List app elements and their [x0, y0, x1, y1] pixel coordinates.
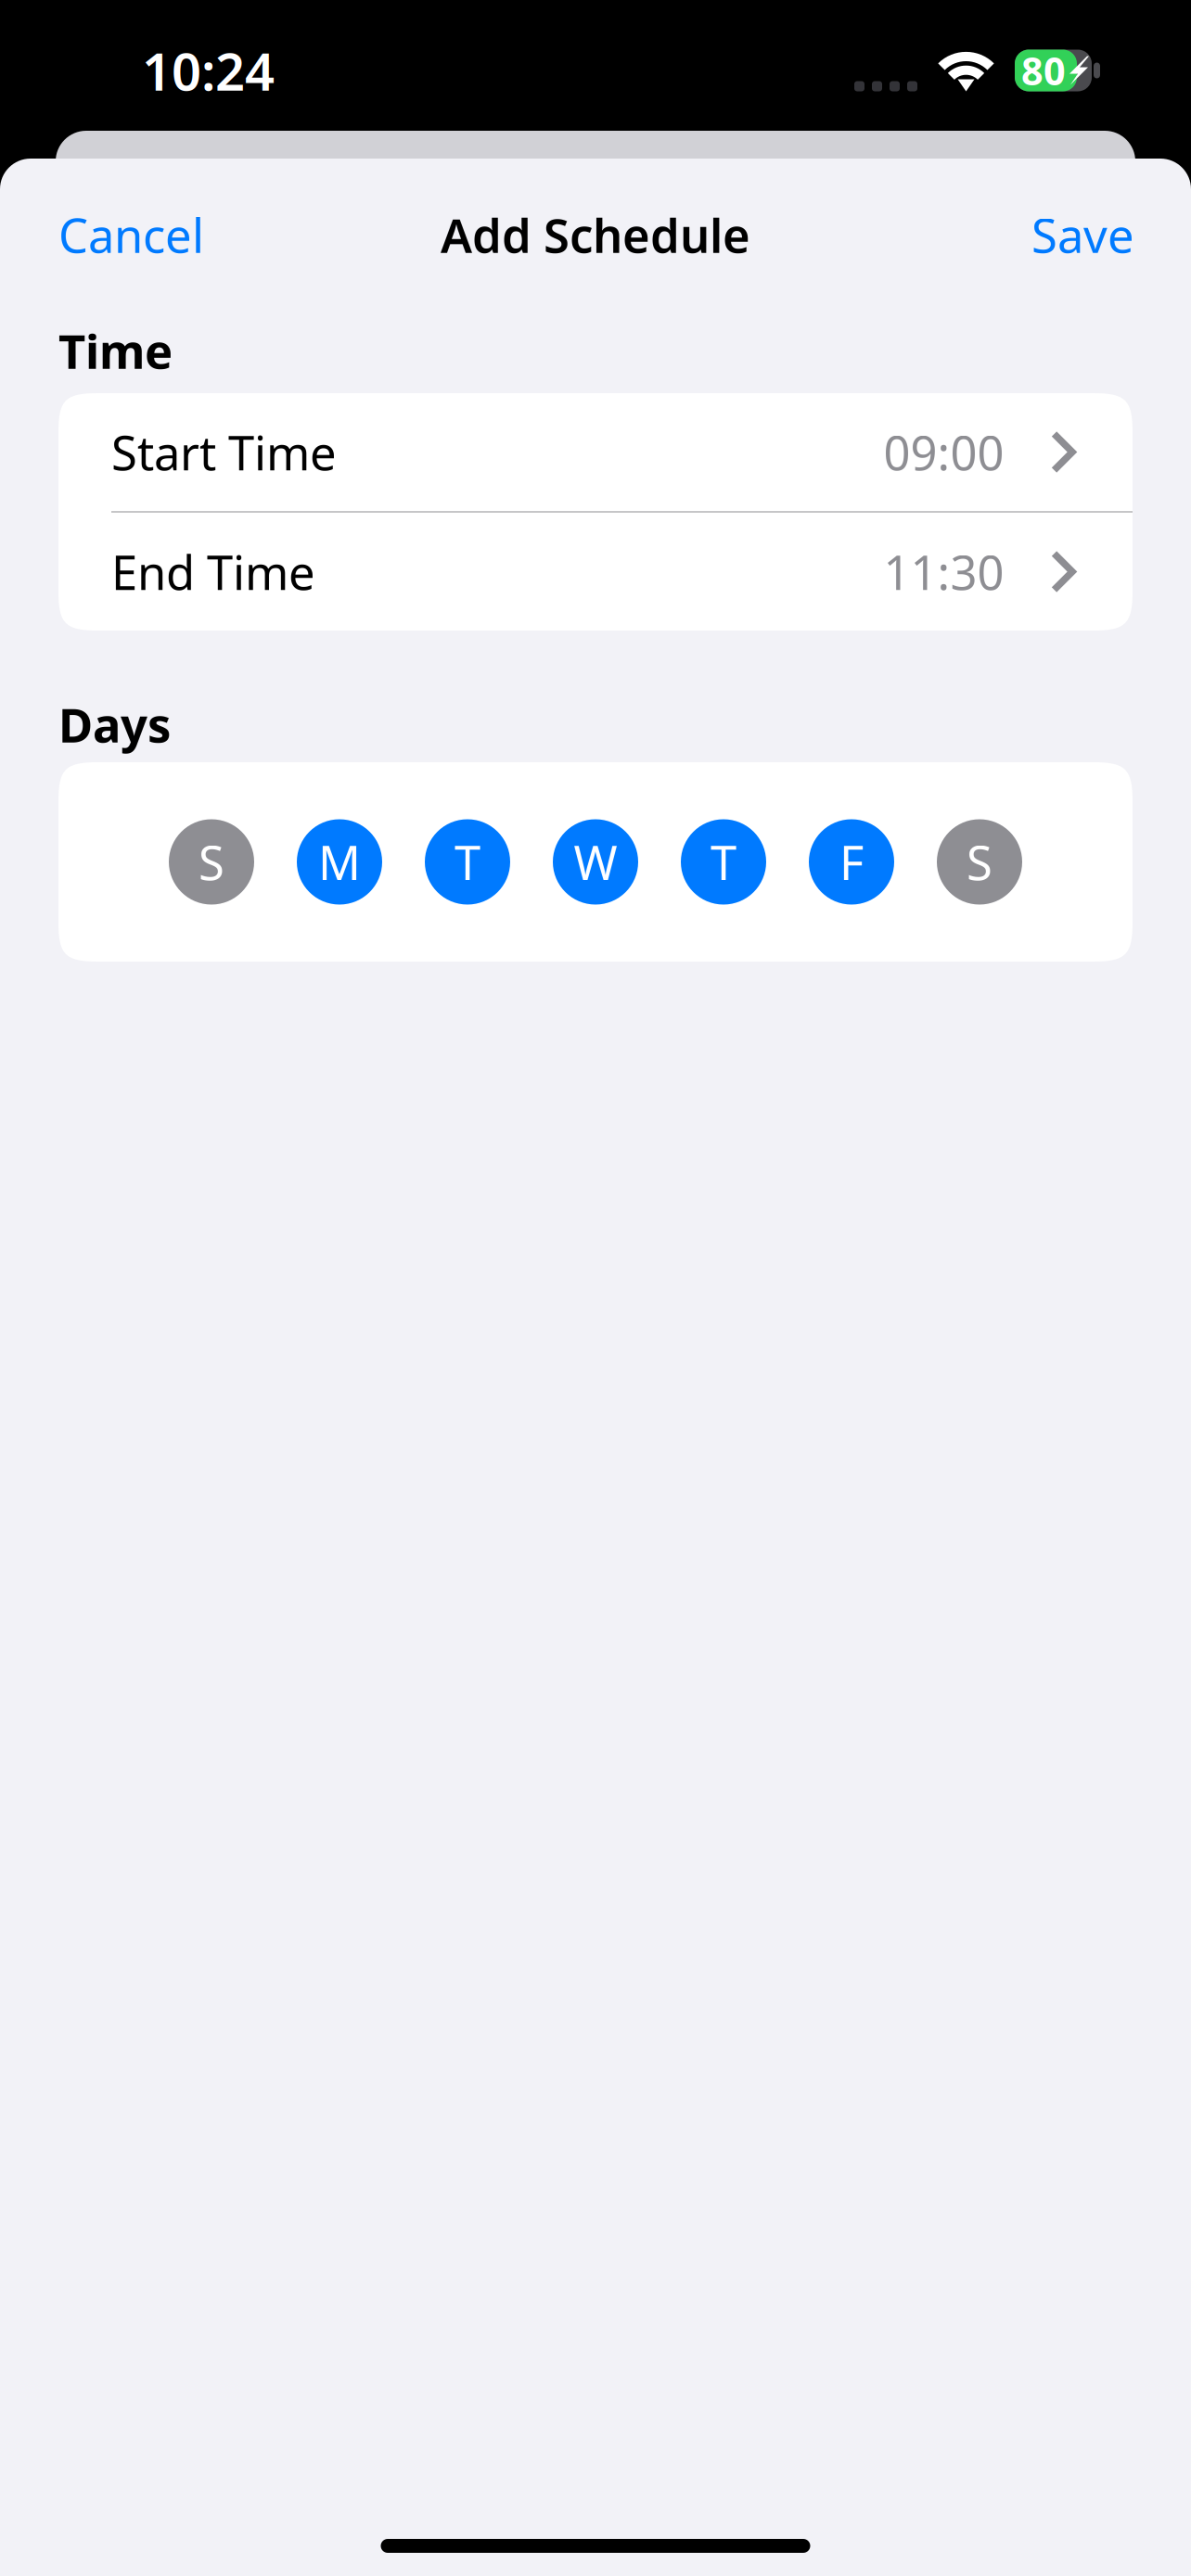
- button[interactable]: Thursday: [681, 819, 766, 905]
- button[interactable]: Monday: [297, 819, 382, 905]
- staticText: T: [455, 831, 480, 893]
- button[interactable]: Tuesday: [425, 819, 510, 905]
- staticText: Cancel: [58, 203, 204, 266]
- staticText: S: [967, 831, 992, 893]
- button[interactable]: Cancel: [58, 203, 204, 266]
- staticText: 10:24: [142, 36, 275, 105]
- staticText: Save: [1031, 203, 1134, 266]
- button[interactable]: End Time: [58, 513, 1133, 631]
- staticText: 09:00: [884, 421, 1004, 483]
- button[interactable]: Sunday: [169, 819, 254, 905]
- staticText: W: [574, 831, 617, 893]
- staticText: F: [839, 831, 864, 893]
- button[interactable]: Saturday: [937, 819, 1022, 905]
- staticText: 80: [1021, 45, 1066, 96]
- staticText: End Time: [111, 541, 315, 603]
- button[interactable]: Wednesday: [553, 819, 638, 905]
- button[interactable]: Start Time: [58, 393, 1133, 511]
- staticText: T: [711, 831, 736, 893]
- staticText: M: [318, 831, 361, 893]
- staticText: Start Time: [111, 421, 337, 483]
- staticText: Add Schedule: [441, 203, 750, 266]
- staticText: Days: [58, 693, 171, 755]
- button[interactable]: Save: [1031, 203, 1134, 266]
- staticText: S: [198, 831, 224, 893]
- button[interactable]: Friday: [809, 819, 894, 905]
- staticText: 11:30: [884, 541, 1004, 603]
- staticText: Time: [58, 319, 173, 382]
